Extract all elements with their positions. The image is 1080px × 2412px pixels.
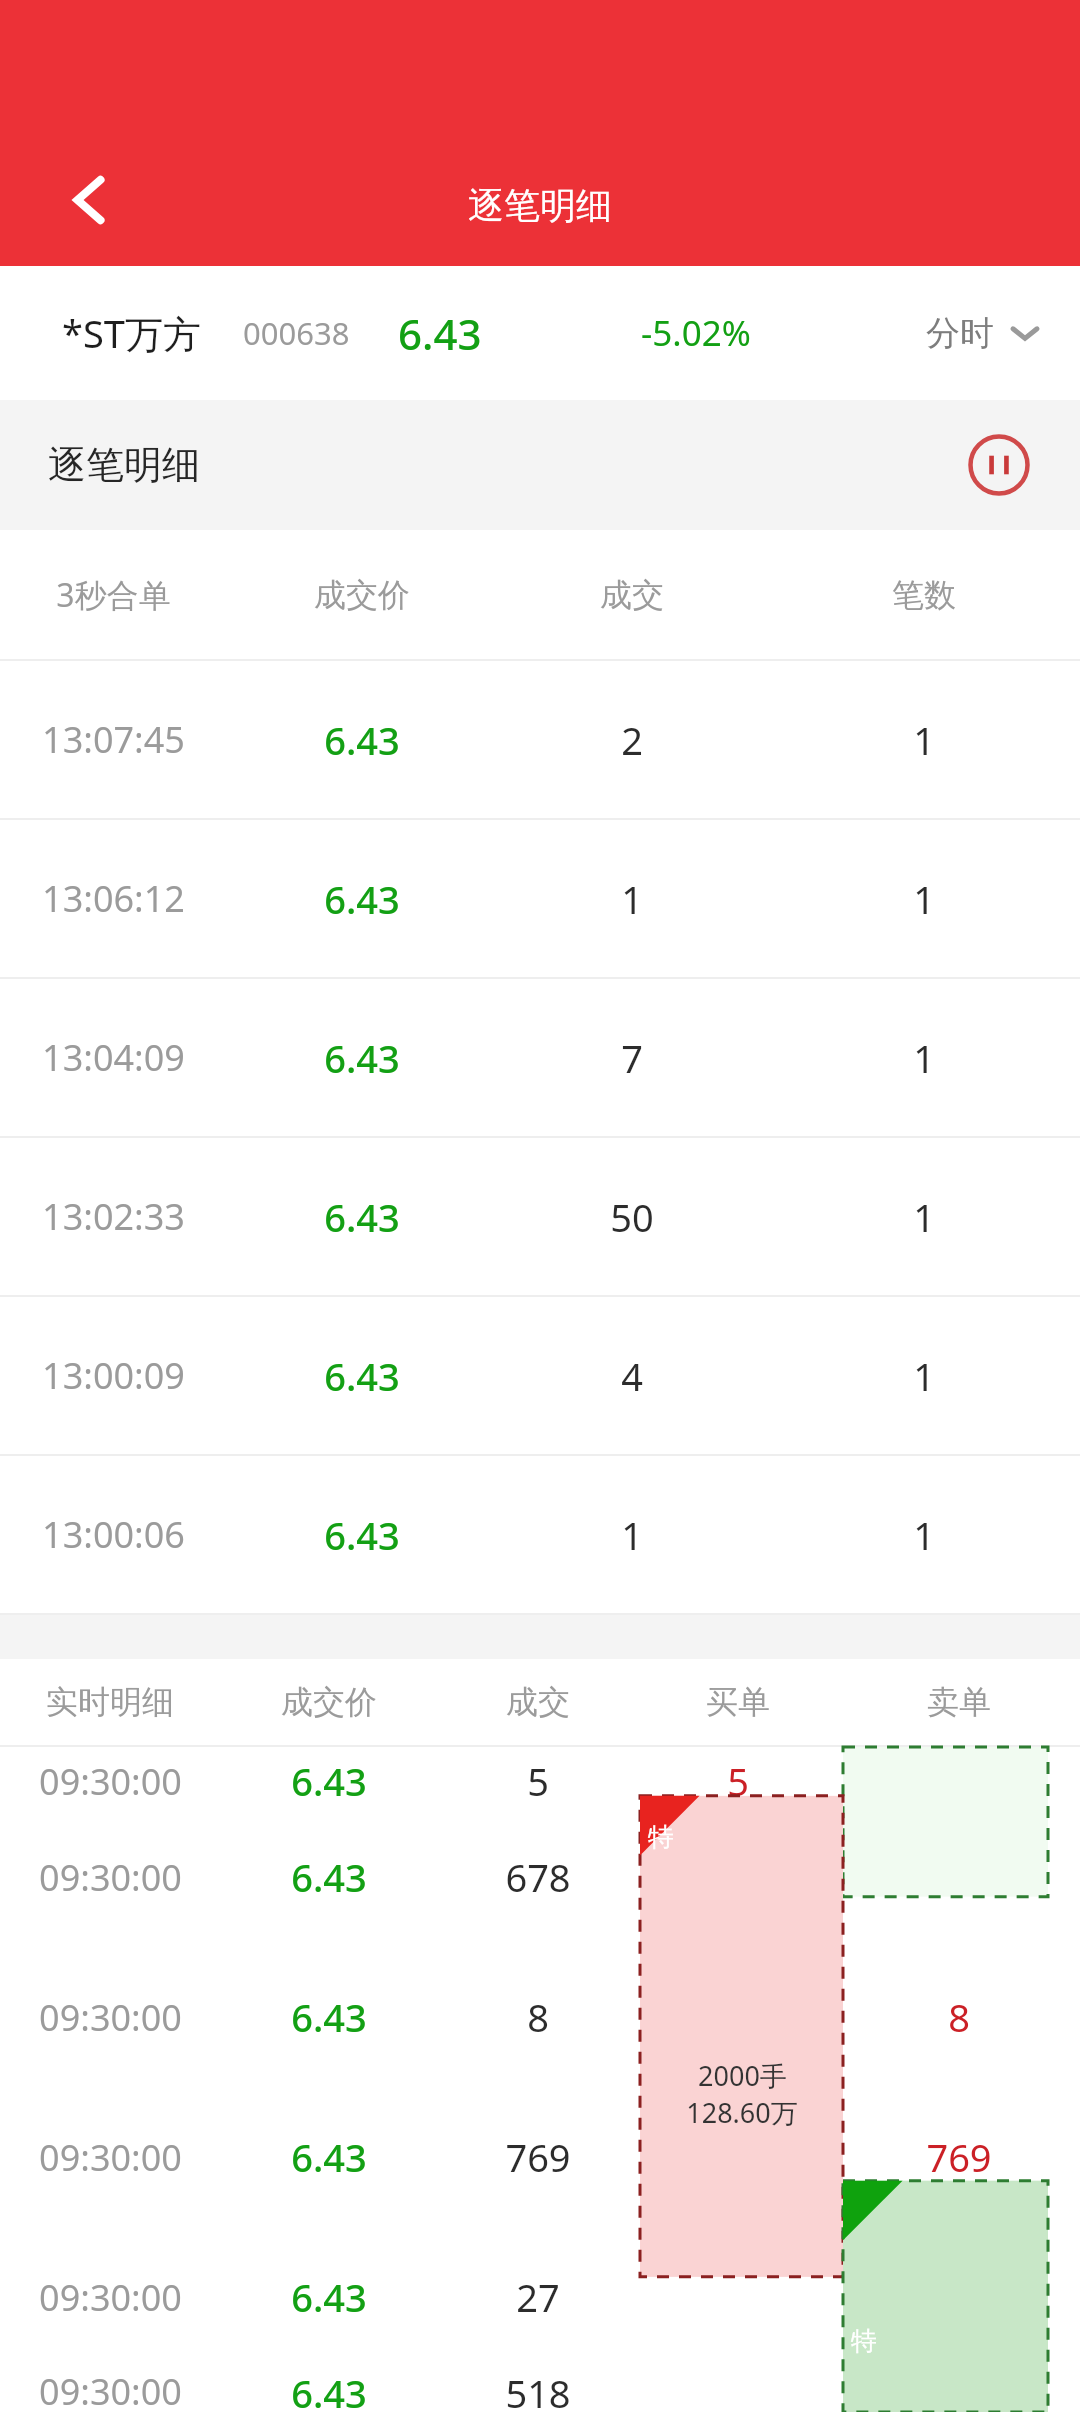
staticText: 1: [913, 1509, 935, 1561]
staticText: 卖单: [927, 1682, 991, 1722]
staticText: 6.43: [324, 1191, 400, 1243]
button[interactable]: 09:30:00: [0, 2087, 1080, 2227]
staticText: 09:30:00: [39, 2367, 182, 2412]
staticText: 成交价: [281, 1682, 377, 1722]
staticText: 27: [516, 2271, 560, 2323]
staticText: 769: [505, 2131, 571, 2183]
staticText: 3秒合单: [56, 573, 171, 617]
staticText: 8: [948, 1991, 970, 2043]
staticText: 1: [621, 873, 643, 925]
button[interactable]: 09:30:00: [0, 2367, 1080, 2412]
button[interactable]: *ST万方: [0, 266, 1080, 400]
staticText: 买单: [706, 1682, 770, 1722]
button[interactable]: 13:07:45: [0, 661, 1080, 818]
staticText: 实时明细: [46, 1682, 174, 1722]
staticText: 5: [527, 1755, 549, 1807]
staticText: 6.43: [291, 2131, 367, 2183]
staticText: 4: [621, 1350, 643, 1402]
button[interactable]: 09:30:00: [0, 1807, 1080, 1947]
staticText: 09:30:00: [39, 1993, 182, 2042]
staticText: 518: [505, 2367, 571, 2412]
staticText: 成交: [506, 1682, 570, 1722]
staticText: 1: [913, 873, 935, 925]
staticText: 6.43: [324, 873, 400, 925]
staticText: 13:00:06: [42, 1510, 185, 1559]
staticText: 000638: [243, 312, 350, 354]
button[interactable]: 09:30:00: [0, 1947, 1080, 2087]
staticText: 2: [621, 714, 643, 766]
staticText: 成交: [600, 575, 664, 615]
staticText: 6.43: [324, 1509, 400, 1561]
staticText: 09:30:00: [39, 2133, 182, 2182]
staticText: *ST万方: [62, 307, 201, 359]
button[interactable]: 13:04:09: [0, 979, 1080, 1136]
staticText: 笔数: [892, 575, 956, 615]
button[interactable]: 13:00:06: [0, 1456, 1080, 1613]
button[interactable]: 13:02:33: [0, 1138, 1080, 1295]
staticText: 成交价: [314, 575, 410, 615]
staticText: 8: [527, 1991, 549, 2043]
button[interactable]: Pause: [960, 426, 1038, 504]
staticText: 7: [621, 1032, 643, 1084]
staticText: 09:30:00: [39, 1853, 182, 1902]
staticText: 6.43: [324, 714, 400, 766]
staticText: 678: [505, 1851, 571, 1903]
button[interactable]: 13:00:09: [0, 1297, 1080, 1454]
staticText: 1: [913, 1350, 935, 1402]
staticText: 1: [913, 1191, 935, 1243]
staticText: 6.43: [324, 1032, 400, 1084]
staticText: 6.43: [291, 1755, 367, 1807]
staticText: 6.43: [291, 2367, 367, 2412]
staticText: -5.02%: [641, 309, 751, 357]
staticText: 769: [926, 2131, 992, 2183]
staticText: 逐笔明细: [468, 183, 612, 228]
button[interactable]: Back: [42, 152, 138, 248]
button[interactable]: 13:06:12: [0, 820, 1080, 977]
staticText: 特: [648, 1821, 674, 1854]
staticText: 5: [727, 1755, 749, 1807]
staticText: 09:30:00: [39, 2273, 182, 2322]
staticText: 6.43: [291, 1851, 367, 1903]
staticText: 分时: [926, 312, 994, 355]
staticText: 13:07:45: [42, 715, 185, 764]
staticText: 13:02:33: [42, 1192, 185, 1241]
staticText: 128.60万: [686, 2094, 798, 2131]
staticText: 特: [851, 2325, 877, 2358]
staticText: 6.43: [291, 2271, 367, 2323]
staticText: 1: [913, 1032, 935, 1084]
staticText: 13:00:09: [42, 1351, 185, 1400]
staticText: 6.43: [291, 1991, 367, 2043]
button[interactable]: 09:30:00: [0, 2227, 1080, 2367]
staticText: 1: [621, 1509, 643, 1561]
staticText: 13:04:09: [42, 1033, 185, 1082]
button[interactable]: 09:30:00: [0, 1755, 1080, 1807]
staticText: 逐笔明细: [48, 441, 200, 489]
staticText: 6.43: [398, 305, 482, 362]
staticText: 1: [913, 714, 935, 766]
staticText: 2000手: [698, 2057, 787, 2094]
staticText: 50: [610, 1191, 654, 1243]
staticText: 6.43: [324, 1350, 400, 1402]
staticText: 09:30:00: [39, 1757, 182, 1806]
staticText: 13:06:12: [42, 874, 185, 923]
